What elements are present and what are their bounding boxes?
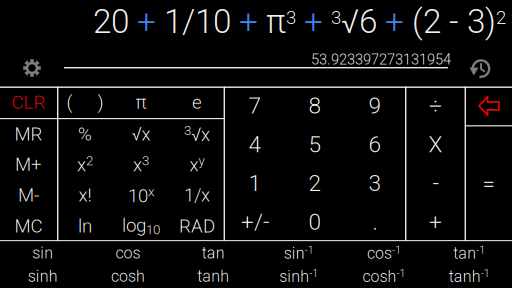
button[interactable]: 2 [285,164,345,203]
staticText: e [192,91,202,113]
staticText: tanh [197,267,229,286]
staticText: 1/x [184,184,210,206]
staticText: cosh [111,267,145,286]
button[interactable]: 3√x [169,119,225,149]
staticText: 10x [128,184,154,206]
button[interactable]: 6 [345,125,405,164]
button[interactable]: sin [0,241,85,265]
button[interactable]: x2 [57,149,113,180]
button[interactable]: π [113,86,169,118]
staticText: MC [14,215,42,237]
button[interactable]: xy [169,149,225,180]
button[interactable]: tan-1 [427,241,512,265]
button[interactable]: = [466,127,512,241]
staticText: sinh [28,267,58,286]
staticText: tan [202,244,225,263]
button[interactable]: ÷ [405,86,466,125]
button[interactable]: cosh [85,265,171,288]
button[interactable]: e [169,86,225,118]
staticText: x2 [77,153,93,176]
button[interactable]: History [469,58,491,80]
staticText: + [137,2,156,41]
button[interactable]: √x [113,119,169,149]
button[interactable]: MC [0,211,57,241]
button[interactable]: X [405,125,466,164]
staticText: + [429,209,442,235]
button[interactable]: 8 [285,86,345,125]
staticText: 8 [308,93,321,119]
button[interactable]: M+ [0,149,57,180]
staticText: 2 [308,170,321,197]
button[interactable]: M- [0,180,57,211]
button[interactable]: tanh-1 [427,265,512,288]
staticText: cosh-1 [362,267,405,286]
button[interactable]: 7 [225,86,285,125]
staticText: ln [78,215,92,237]
staticText: cos [115,244,140,263]
staticText: RAD [179,215,215,237]
staticText: + [296,2,323,41]
staticText: 7 [248,93,261,119]
staticText: . [372,209,377,235]
button[interactable]: ( ) [57,86,113,118]
staticText: % [78,123,92,145]
button[interactable]: MR [0,119,57,149]
staticText: x3 [133,153,149,176]
staticText: tanh-1 [449,267,490,286]
button[interactable]: cosh-1 [341,265,427,288]
button[interactable]: 1 [225,164,285,203]
button[interactable]: 10x [113,180,169,211]
staticText: 3√6 [323,2,385,41]
button[interactable]: + [405,203,466,242]
staticText: xy [189,153,204,176]
staticText: (2 - 3)2 [404,2,506,41]
button[interactable]: 9 [345,86,405,125]
staticText: = [482,171,495,197]
staticText: √x [131,123,150,145]
staticText: - [432,170,438,197]
button[interactable]: log10 [113,211,169,241]
button[interactable]: - [405,164,466,203]
button[interactable]: tan [171,241,256,265]
button[interactable]: 5 [285,125,345,164]
staticText: CLR [11,91,45,113]
button[interactable]: % [57,119,113,149]
button[interactable]: RAD [169,211,225,241]
button[interactable]: Backspace [466,86,512,125]
button[interactable]: 3 [345,164,405,203]
button[interactable]: sinh-1 [256,265,341,288]
staticText: 4 [248,131,261,158]
button[interactable]: 0 [285,203,345,242]
button[interactable]: sinh [0,265,85,288]
staticText: sin-1 [284,244,314,262]
button[interactable]: ln [57,211,113,241]
button[interactable]: +/- [225,203,285,242]
button[interactable]: CLR [0,86,57,118]
staticText: π [135,91,146,113]
button[interactable]: tanh [171,265,256,288]
staticText: X [428,131,442,158]
staticText: log10 [122,215,160,237]
button[interactable]: Settings [21,57,43,79]
staticText: + [385,2,404,41]
staticText: π3 [258,2,296,41]
staticText: 9 [368,93,381,119]
button[interactable]: 4 [225,125,285,164]
staticText: M+ [15,153,42,175]
staticText: MR [14,123,42,145]
button[interactable]: cos [85,241,171,265]
staticText: 3√x [184,123,210,145]
staticText: ( ) [66,91,103,113]
button[interactable]: x! [57,180,113,211]
staticText: 53.923397273131954 [311,51,451,68]
staticText: cos-1 [367,244,401,262]
button[interactable]: . [345,203,405,242]
staticText: 1 [248,170,261,197]
button[interactable]: x3 [113,149,169,180]
button[interactable]: cos-1 [341,241,427,265]
staticText: 6 [368,131,381,158]
staticText: ÷ [429,93,442,119]
button[interactable]: 1/x [169,180,225,211]
staticText: x! [78,184,91,206]
button[interactable]: sin-1 [256,241,341,265]
